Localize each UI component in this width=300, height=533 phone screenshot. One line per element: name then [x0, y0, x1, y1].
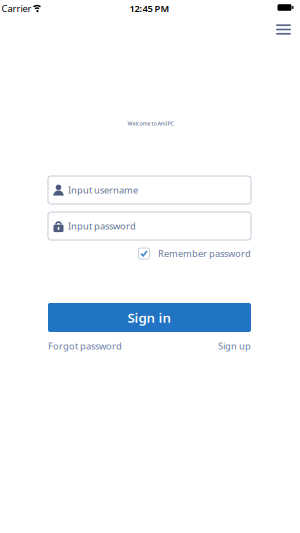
- button[interactable]: Remember password: [48, 247, 251, 260]
- staticText: Welcome to AmIPC: [127, 120, 173, 127]
- staticText: Sign in: [127, 309, 171, 326]
- staticText: Input username: [68, 184, 138, 196]
- staticText: Carrier: [1, 2, 31, 15]
- staticText: Input password: [68, 220, 136, 232]
- button[interactable]: Sign in: [48, 303, 251, 332]
- button[interactable]: Forgot password: [48, 340, 122, 352]
- staticText: Forgot password: [48, 340, 122, 352]
- staticText: 12:45 PM: [129, 2, 169, 15]
- button[interactable]: Input password: [48, 212, 251, 240]
- staticText: Sign up: [218, 340, 251, 352]
- staticText: Remember password: [158, 247, 251, 260]
- button[interactable]: Sign up: [218, 340, 251, 352]
- button[interactable]: Input username: [48, 176, 251, 204]
- button[interactable]: [272, 20, 295, 39]
